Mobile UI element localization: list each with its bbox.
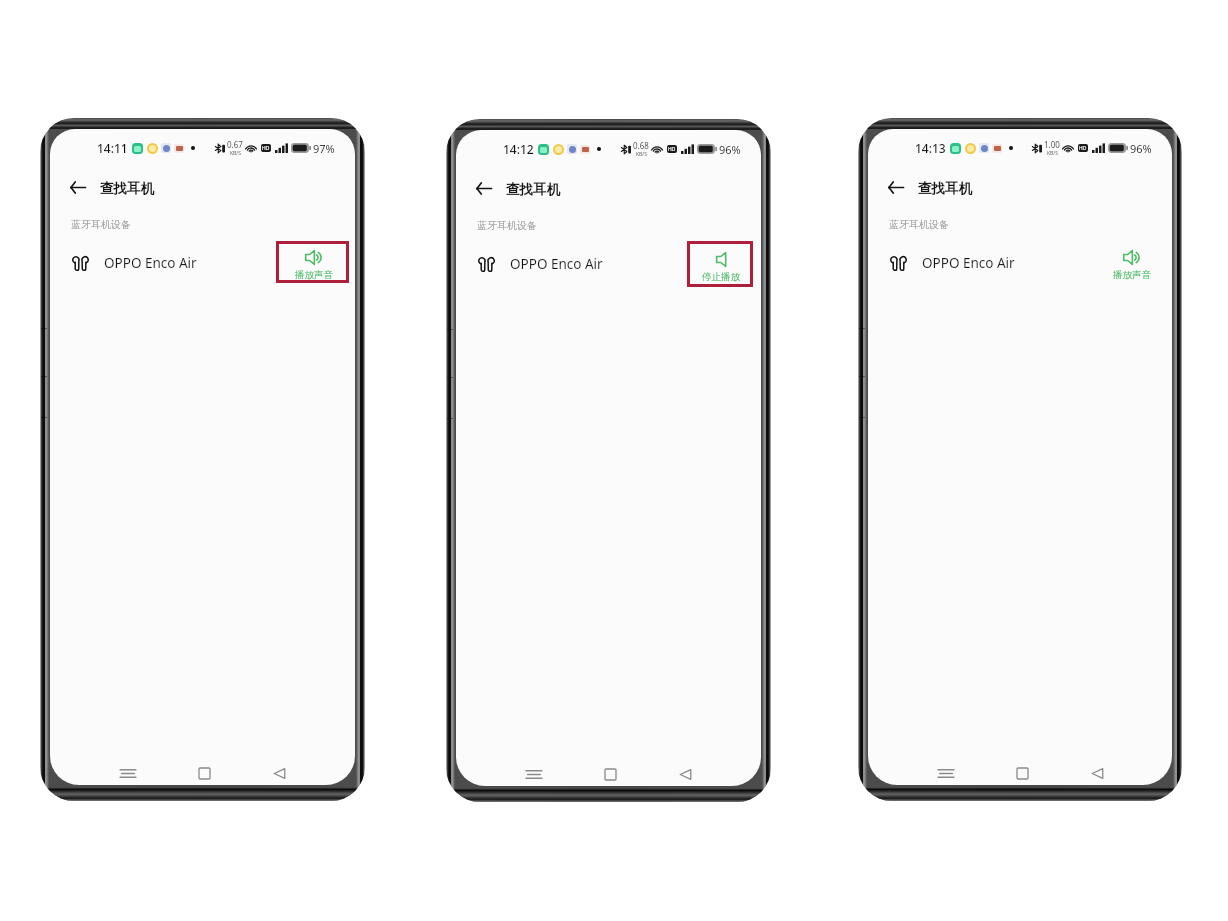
staticText: KB/S	[1047, 150, 1058, 157]
staticText: OPPO Enco Air	[104, 254, 197, 272]
button[interactable]: Recents	[925, 761, 966, 785]
staticText: 停止播放	[702, 271, 740, 283]
staticText: 14:12	[503, 141, 534, 157]
button[interactable]: OPPO Enco Air	[50, 240, 355, 286]
button[interactable]: Home	[184, 761, 225, 785]
button[interactable]: 播放声音	[1094, 241, 1167, 283]
button[interactable]: OPPO Enco Air	[456, 241, 761, 287]
staticText: 查找耳机	[918, 180, 972, 197]
staticText: 14:13	[915, 140, 946, 156]
staticText: 96%	[719, 142, 741, 157]
button[interactable]: 停止播放	[687, 241, 753, 287]
staticText: KB/S	[230, 150, 241, 157]
staticText: 0.67	[227, 139, 243, 150]
staticText: 97%	[313, 141, 335, 156]
button[interactable]: Home	[1002, 761, 1043, 785]
button[interactable]: OPPO Enco Air	[868, 240, 1172, 286]
staticText: 96%	[1130, 141, 1152, 156]
staticText: 蓝牙耳机设备	[71, 218, 131, 231]
staticText: 播放声音	[1113, 269, 1151, 281]
staticText: 查找耳机	[100, 180, 154, 197]
staticText: OPPO Enco Air	[510, 255, 603, 273]
staticText: 1.00	[1044, 139, 1060, 150]
staticText: 查找耳机	[506, 181, 560, 198]
staticText: 蓝牙耳机设备	[889, 218, 949, 231]
button[interactable]: Back	[882, 174, 909, 201]
staticText: 播放声音	[295, 269, 333, 281]
button[interactable]: Recents	[513, 762, 554, 786]
button[interactable]: Home	[590, 762, 631, 786]
button[interactable]: Back	[665, 762, 706, 786]
staticText: 14:11	[97, 140, 128, 156]
button[interactable]: Back	[1077, 761, 1118, 785]
button[interactable]: Back	[259, 761, 300, 785]
button[interactable]: Back	[64, 174, 91, 201]
staticText: 0.68	[633, 140, 649, 151]
staticText: OPPO Enco Air	[922, 254, 1015, 272]
staticText: KB/S	[636, 151, 647, 158]
staticText: HD	[668, 146, 676, 153]
button[interactable]: 播放声音	[276, 241, 349, 283]
button[interactable]: Recents	[107, 761, 148, 785]
staticText: HD	[262, 145, 270, 152]
staticText: HD	[1079, 145, 1087, 152]
button[interactable]: Back	[470, 175, 497, 202]
staticText: 蓝牙耳机设备	[477, 219, 537, 232]
